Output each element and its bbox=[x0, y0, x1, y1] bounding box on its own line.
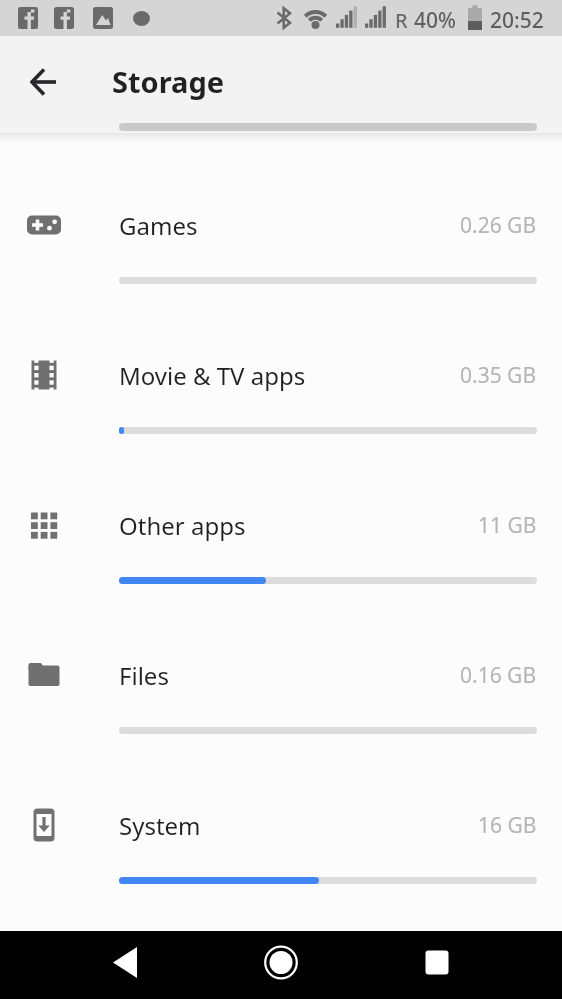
staticText: 0.26 GB bbox=[460, 211, 537, 240]
button[interactable] bbox=[251, 938, 311, 986]
button[interactable]: Files bbox=[0, 600, 562, 750]
button[interactable]: Other apps bbox=[0, 450, 562, 600]
staticText: 0.35 GB bbox=[460, 361, 537, 390]
staticText: Files bbox=[119, 659, 169, 692]
staticText: Movie & TV apps bbox=[119, 359, 306, 392]
staticText: Other apps bbox=[119, 509, 246, 542]
staticText: Games bbox=[119, 209, 198, 242]
button[interactable] bbox=[95, 938, 155, 986]
staticText: 16 GB bbox=[478, 811, 537, 840]
button[interactable]: System bbox=[0, 750, 562, 900]
staticText: System bbox=[119, 809, 201, 842]
button[interactable]: Games bbox=[0, 150, 562, 300]
staticText: Storage bbox=[112, 62, 225, 133]
staticText: R bbox=[395, 7, 408, 34]
button[interactable]: Movie & TV apps bbox=[0, 300, 562, 450]
button[interactable] bbox=[407, 938, 467, 986]
button[interactable] bbox=[25, 63, 63, 101]
staticText: 20:52 bbox=[490, 6, 544, 35]
staticText: 40% bbox=[414, 6, 456, 35]
staticText: 11 GB bbox=[478, 511, 537, 540]
staticText: 0.16 GB bbox=[460, 661, 537, 690]
